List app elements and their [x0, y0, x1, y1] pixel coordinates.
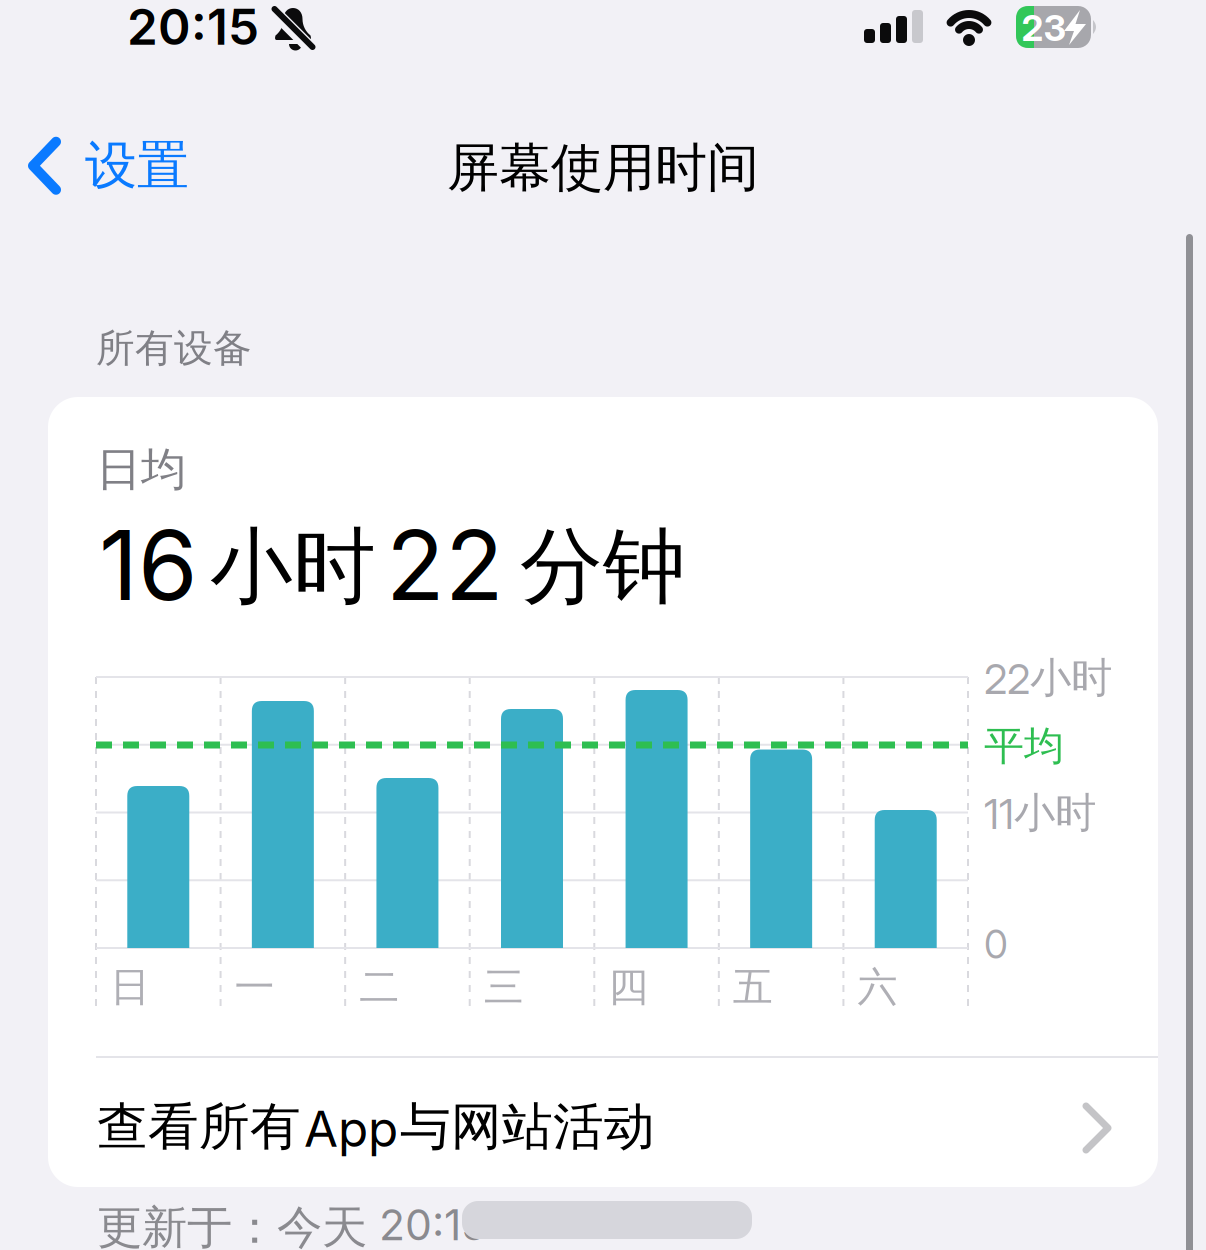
staticText: 查看所有 [97, 1095, 301, 1159]
staticText: 分钟 [520, 515, 686, 619]
staticText: 0 [984, 921, 1008, 968]
staticText: 六 [857, 962, 897, 1012]
staticText: 一 [235, 962, 275, 1012]
staticText: 22 [386, 507, 504, 623]
staticText: 与网站活动 [400, 1095, 655, 1159]
staticText: 20:15 [379, 1199, 487, 1250]
staticText: 小时 [210, 515, 376, 619]
button[interactable]: 设置 [29, 133, 189, 198]
staticText: 23 [1021, 6, 1066, 50]
staticText: 平均 [984, 721, 1064, 771]
staticText: 更新于：今天 [97, 1199, 367, 1250]
staticText: 20:15 [127, 0, 259, 57]
staticText: 设置 [85, 133, 189, 198]
staticText: 22小时 [984, 652, 1112, 704]
staticText: 16 [99, 507, 198, 623]
staticText: 二 [359, 962, 399, 1012]
staticText: 11小时 [984, 787, 1096, 839]
staticText: App [304, 1099, 398, 1159]
staticText: 四 [608, 962, 648, 1012]
staticText: 屏幕使用时间 [447, 135, 759, 201]
staticText: 日 [110, 962, 150, 1012]
button[interactable]: 查看所有 [0, 0, 1206, 1250]
staticText: 所有设备 [96, 324, 252, 373]
staticText: 五 [733, 962, 773, 1012]
staticText: 日均 [96, 441, 186, 498]
staticText: 三 [484, 962, 524, 1012]
